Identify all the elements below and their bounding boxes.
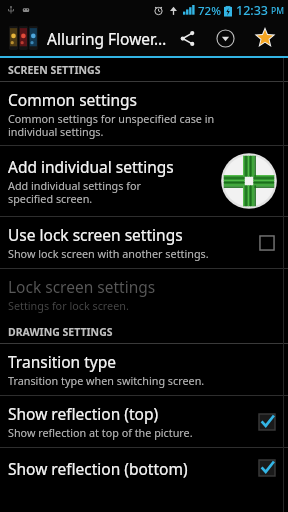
button[interactable]: Share <box>175 26 199 50</box>
staticText: Common settings for unspecified case in … <box>8 111 215 139</box>
staticText: Show reflection (bottom) <box>8 458 188 479</box>
staticText: Use lock screen settings <box>8 224 183 245</box>
staticText: DRAWING SETTINGS <box>8 325 113 339</box>
staticText: Common settings <box>8 89 138 110</box>
button[interactable]: Show reflection (top) <box>0 396 288 447</box>
staticText: Transition type <box>8 351 116 372</box>
staticText: Show lock screen with another settings. <box>8 246 209 261</box>
button[interactable]: Transition type <box>0 344 288 395</box>
staticText: Show reflection at top of the picture. <box>8 425 193 440</box>
staticText: Add individual settings for specified sc… <box>8 178 141 206</box>
staticText: Show reflection (top) <box>8 403 159 424</box>
staticText: PM <box>271 5 284 17</box>
staticText: 12:33 <box>236 2 269 19</box>
button[interactable]: Lock screen settings <box>0 269 288 320</box>
staticText: Settings for lock screen. <box>8 298 129 313</box>
button[interactable]: Use lock screen settings <box>0 217 288 268</box>
button[interactable]: Favorite <box>252 25 278 51</box>
staticText: SCREEN SETTINGS <box>8 63 101 77</box>
staticText: Transition type when switching screen. <box>8 373 205 388</box>
button[interactable]: Checked <box>256 411 278 433</box>
button[interactable]: Add individual settings <box>0 146 288 216</box>
button[interactable]: Add individual settings <box>220 152 278 210</box>
button[interactable]: Unchecked <box>256 232 278 254</box>
staticText: Alluring Flower… <box>47 28 175 49</box>
staticText: Add individual settings <box>8 156 174 177</box>
button[interactable]: More options <box>213 26 237 50</box>
button[interactable]: Checked <box>256 457 278 479</box>
button[interactable]: Common settings <box>0 82 288 145</box>
staticText: Lock screen settings <box>8 276 156 297</box>
staticText: 72% <box>198 3 221 19</box>
button[interactable]: Show reflection (bottom) <box>0 448 288 488</box>
